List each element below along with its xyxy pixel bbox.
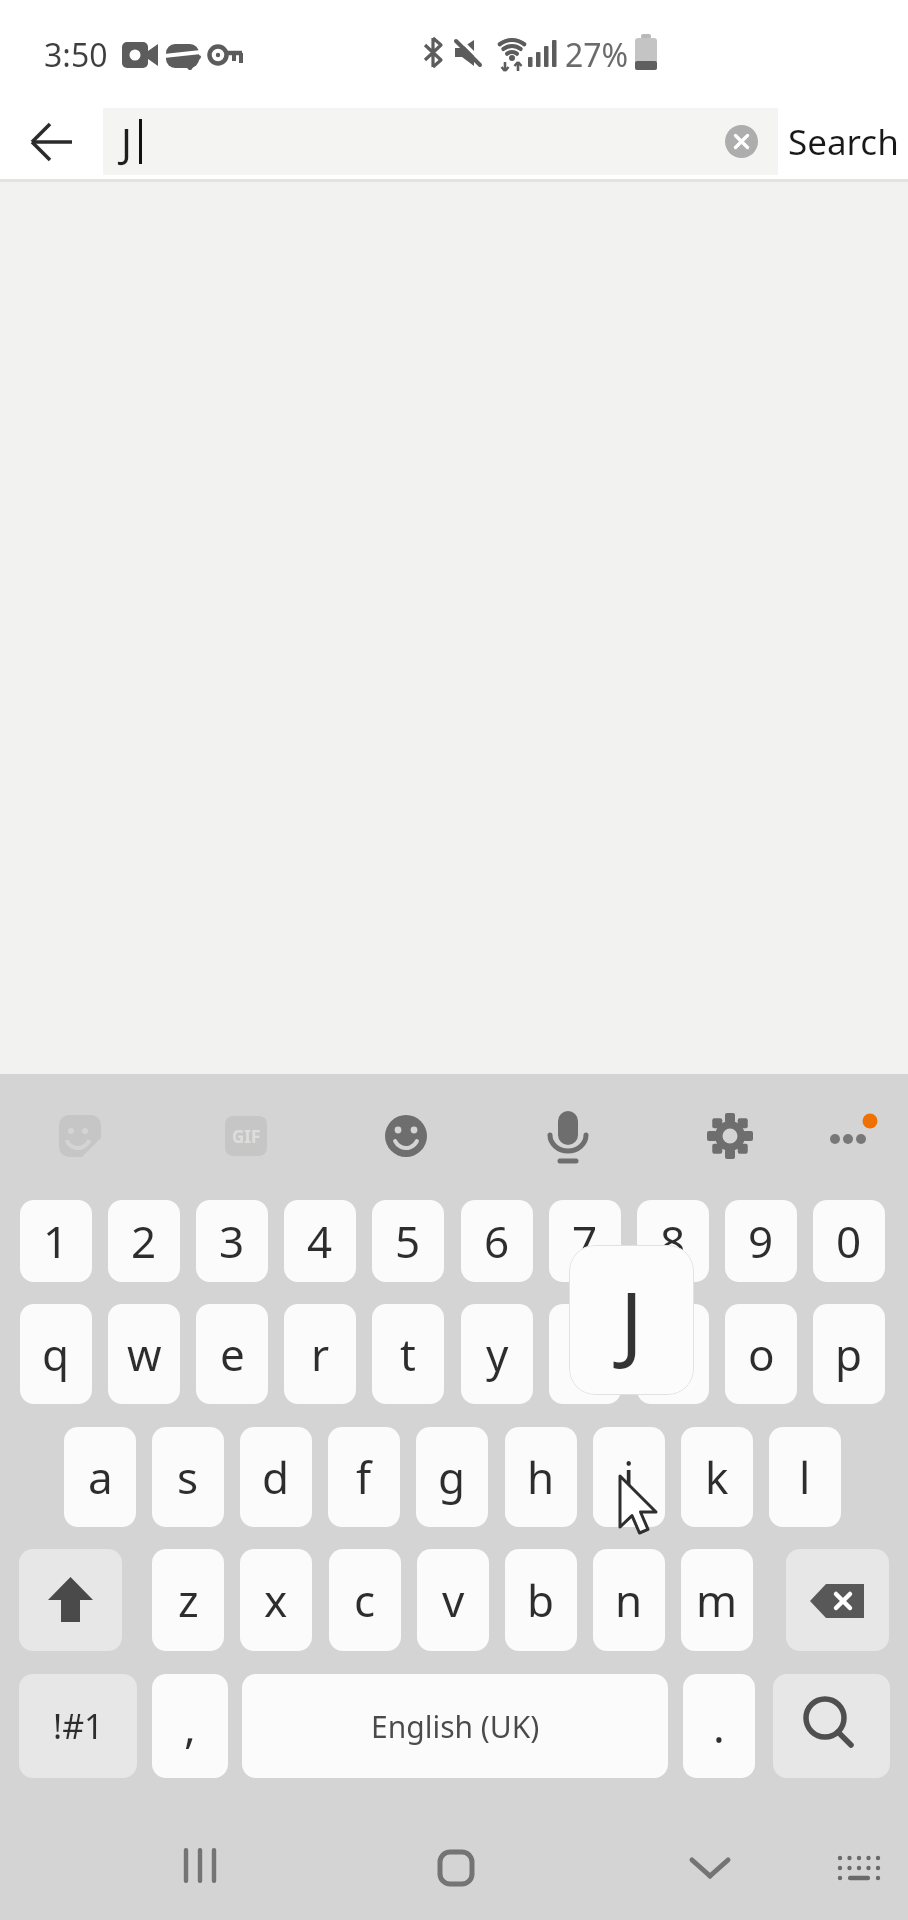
staticText: n xyxy=(615,1570,643,1630)
button[interactable]: o xyxy=(725,1304,797,1404)
button[interactable]: 3 xyxy=(196,1200,268,1282)
button[interactable]: r xyxy=(284,1304,356,1404)
staticText: Search xyxy=(788,118,899,166)
staticText: z xyxy=(178,1570,199,1630)
staticText: 8 xyxy=(660,1211,686,1271)
button[interactable]: f xyxy=(328,1427,400,1527)
staticText: 1 xyxy=(43,1211,69,1271)
button[interactable]: x xyxy=(240,1549,312,1651)
staticText: J xyxy=(620,1263,643,1377)
button[interactable]: J xyxy=(103,108,778,175)
staticText: y xyxy=(486,1324,509,1384)
staticText: o xyxy=(748,1324,775,1384)
button[interactable] xyxy=(52,1108,108,1164)
button[interactable] xyxy=(242,1674,668,1778)
button[interactable]: 9 xyxy=(725,1200,797,1282)
button[interactable]: v xyxy=(417,1549,489,1651)
staticText: f xyxy=(356,1447,372,1507)
button[interactable] xyxy=(20,112,80,172)
button[interactable]: a xyxy=(64,1427,136,1527)
button[interactable]: z xyxy=(152,1549,224,1651)
button[interactable]: e xyxy=(196,1304,268,1404)
staticText: s xyxy=(177,1447,199,1507)
staticText: 4 xyxy=(307,1211,333,1271)
button[interactable]: h xyxy=(505,1427,577,1527)
button[interactable] xyxy=(725,125,758,158)
button[interactable]: 6 xyxy=(461,1200,533,1282)
button[interactable]: q xyxy=(20,1304,92,1404)
button[interactable] xyxy=(702,1108,758,1164)
staticText: l xyxy=(799,1447,811,1507)
staticText: e xyxy=(220,1324,245,1384)
staticText: w xyxy=(127,1324,162,1384)
staticText: 2 xyxy=(131,1211,157,1271)
button[interactable] xyxy=(812,1100,888,1166)
staticText: m xyxy=(696,1570,738,1630)
button[interactable]: !#1 xyxy=(19,1674,137,1778)
button[interactable]: . xyxy=(683,1674,755,1778)
staticText: a xyxy=(88,1447,113,1507)
button[interactable]: k xyxy=(681,1427,753,1527)
staticText: 7 xyxy=(572,1211,598,1271)
staticText: 27% xyxy=(565,33,629,77)
button[interactable] xyxy=(150,1816,250,1916)
button[interactable]: p xyxy=(813,1304,885,1404)
staticText: 6 xyxy=(484,1211,510,1271)
button[interactable]: 5 xyxy=(372,1200,444,1282)
staticText: , xyxy=(184,1696,196,1756)
button[interactable] xyxy=(540,1105,596,1167)
staticText: q xyxy=(42,1324,70,1384)
staticText: GIF xyxy=(232,1125,261,1148)
button[interactable]: , xyxy=(152,1674,228,1778)
button[interactable]: u xyxy=(549,1304,621,1404)
button[interactable] xyxy=(19,1549,122,1651)
button[interactable]: b xyxy=(505,1549,577,1651)
button[interactable] xyxy=(773,1674,890,1778)
staticText: . xyxy=(713,1696,725,1756)
staticText: t xyxy=(400,1324,416,1384)
button[interactable]: 2 xyxy=(108,1200,180,1282)
staticText: h xyxy=(527,1447,555,1507)
button[interactable]: g xyxy=(416,1427,488,1527)
staticText: 3 xyxy=(219,1211,245,1271)
button[interactable]: j xyxy=(593,1427,665,1527)
staticText: 3:50 xyxy=(44,33,108,77)
staticText: English (UK) xyxy=(371,1706,540,1747)
button[interactable]: t xyxy=(372,1304,444,1404)
staticText: 9 xyxy=(748,1211,774,1271)
button[interactable]: d xyxy=(240,1427,312,1527)
staticText: x xyxy=(264,1570,288,1630)
button[interactable]: n xyxy=(593,1549,665,1651)
button[interactable] xyxy=(786,1549,889,1651)
staticText: 5 xyxy=(395,1211,421,1271)
button[interactable] xyxy=(660,1816,760,1916)
staticText: j xyxy=(623,1447,635,1507)
button[interactable]: 0 xyxy=(813,1200,885,1282)
staticText: c xyxy=(354,1570,376,1630)
button[interactable]: Search xyxy=(778,108,908,175)
staticText: k xyxy=(705,1447,729,1507)
staticText: b xyxy=(527,1570,555,1630)
button[interactable]: 1 xyxy=(20,1200,92,1282)
button[interactable]: y xyxy=(461,1304,533,1404)
button[interactable] xyxy=(818,1826,898,1906)
button[interactable]: m xyxy=(681,1549,753,1651)
button[interactable]: 4 xyxy=(284,1200,356,1282)
button[interactable]: i xyxy=(637,1304,709,1404)
button[interactable]: GIF xyxy=(217,1108,273,1164)
button[interactable] xyxy=(378,1108,434,1164)
button[interactable]: c xyxy=(329,1549,401,1651)
button[interactable]: s xyxy=(152,1427,224,1527)
staticText: v xyxy=(442,1570,465,1630)
button[interactable]: w xyxy=(108,1304,180,1404)
button[interactable]: 7 xyxy=(549,1200,621,1282)
button[interactable]: l xyxy=(769,1427,841,1527)
staticText: g xyxy=(438,1447,466,1507)
button[interactable] xyxy=(406,1816,506,1916)
button[interactable]: 8 xyxy=(637,1200,709,1282)
staticText: r xyxy=(311,1324,330,1384)
staticText: d xyxy=(262,1447,290,1507)
staticText: !#1 xyxy=(53,1703,104,1749)
